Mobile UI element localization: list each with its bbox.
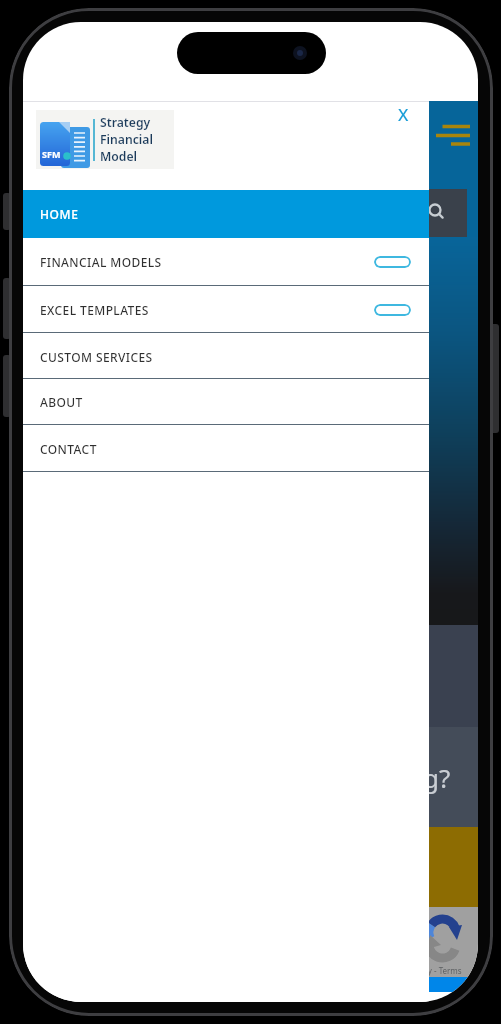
staticText: ABOUT [40,394,83,410]
button[interactable]: FINANCIAL MODELS [23,238,429,286]
staticText: HOME [40,206,79,222]
button[interactable]: ABOUT [23,379,429,425]
button[interactable]: CUSTOM SERVICES [23,333,429,380]
staticText: EXCEL TEMPLATES [40,302,149,318]
button[interactable]: X [390,101,416,127]
staticText: cy - Terms [424,965,462,976]
button[interactable]: HOME [23,190,429,238]
button[interactable] [433,122,473,148]
button[interactable]: SFM [36,110,174,169]
staticText: Model [100,148,138,165]
staticText: X [398,103,409,126]
button[interactable]: CONTACT [23,425,429,473]
staticText: CUSTOM SERVICES [40,349,153,365]
staticText: FINANCIAL MODELS [40,254,162,270]
staticText: Financial [100,131,153,148]
button[interactable] [421,189,467,238]
staticText: g? [423,760,451,795]
staticText: CONTACT [40,441,97,457]
button[interactable]: EXCEL TEMPLATES [23,286,429,333]
staticText: SFM [42,148,61,160]
staticText: Strategy [100,114,151,131]
